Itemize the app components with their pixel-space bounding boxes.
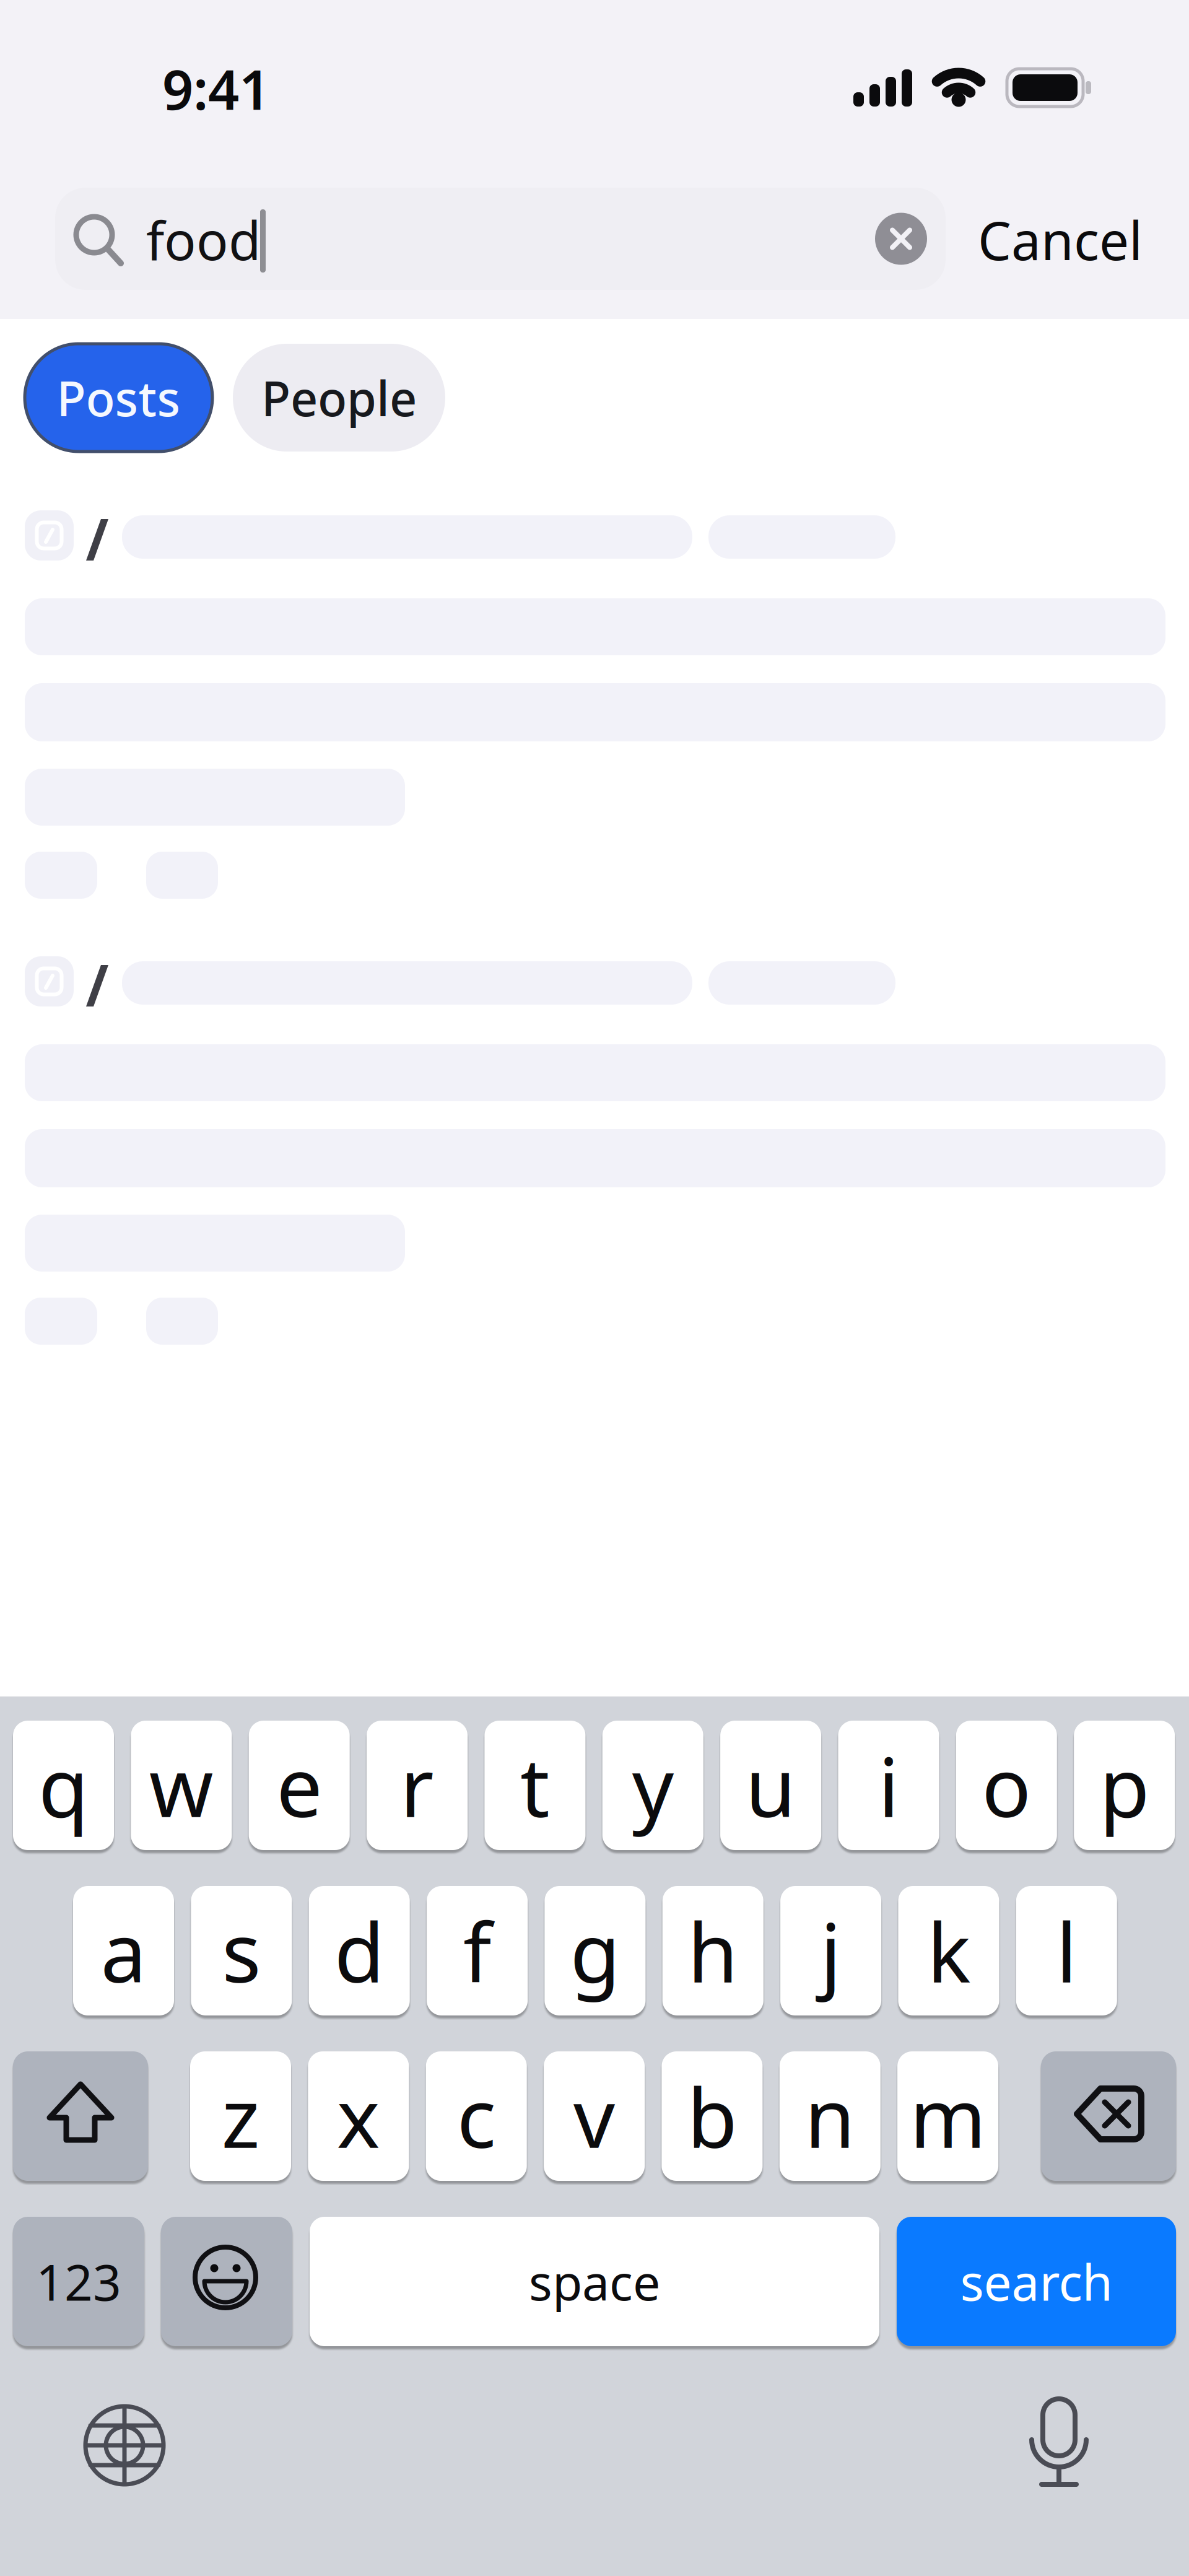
staticText: food [146,205,261,275]
staticText: p [1099,1731,1149,1840]
staticText: a [101,1896,146,2005]
button[interactable]: k [898,1886,999,2015]
button[interactable]: i [838,1721,939,1850]
staticText: n [805,2062,855,2170]
staticText: k [927,1896,970,2005]
button[interactable]: u [720,1721,821,1850]
button[interactable]: Emoji [161,2217,292,2346]
staticText: x [337,2062,380,2170]
button[interactable]: Clear text [875,213,927,265]
button[interactable]: r [367,1721,468,1850]
button[interactable]: s [191,1886,292,2015]
staticText: e [276,1731,322,1840]
button[interactable]: food [55,188,946,290]
button[interactable]: o [956,1721,1057,1850]
staticText: g [570,1896,620,2005]
button[interactable]: t [485,1721,585,1850]
staticText: j [820,1896,841,2005]
staticText: search [960,2249,1113,2314]
button[interactable]: b [662,2051,763,2181]
staticText: h [688,1896,738,2005]
button[interactable]: Posts [25,344,212,452]
staticText: z [221,2062,260,2170]
button[interactable]: w [131,1721,232,1850]
staticText: i [878,1731,899,1840]
button[interactable]: a [73,1886,174,2015]
button[interactable]: j [780,1886,881,2015]
staticText: q [38,1731,89,1840]
staticText: m [910,2062,986,2170]
button[interactable]: Shift [13,2051,148,2181]
staticText: u [745,1731,796,1840]
staticText: l [1056,1896,1077,2005]
staticText: b [687,2062,737,2170]
staticText: Posts [57,366,181,429]
button[interactable]: space [310,2217,879,2346]
button[interactable]: search [897,2217,1176,2346]
button[interactable]: l [1016,1886,1117,2015]
staticText: People [261,366,417,429]
staticText: space [529,2249,660,2314]
staticText: o [982,1731,1031,1840]
button[interactable]: x [308,2051,409,2181]
button[interactable]: e [249,1721,350,1850]
button[interactable]: v [544,2051,645,2181]
button[interactable]: Numbers [13,2217,144,2346]
staticText: f [463,1896,491,2005]
button[interactable]: f [427,1886,528,2015]
button[interactable]: c [426,2051,527,2181]
staticText: s [222,1896,261,2005]
button[interactable]: Cancel [978,205,1143,275]
staticText: d [334,1896,384,2005]
button[interactable]: g [545,1886,646,2015]
button[interactable]: q [13,1721,114,1850]
button[interactable]: y [602,1721,703,1850]
button[interactable]: m [897,2051,998,2181]
button[interactable]: h [662,1886,763,2015]
staticText: 9:41 [162,52,270,125]
button[interactable]: d [309,1886,410,2015]
button[interactable]: Next keyboard [79,2400,170,2491]
button[interactable]: p [1074,1721,1175,1850]
staticText: v [573,2062,615,2170]
staticText: 123 [36,2249,121,2314]
staticText: y [632,1731,674,1840]
button[interactable]: People [233,344,445,452]
staticText: r [400,1731,434,1840]
staticText: w [149,1731,214,1840]
staticText: c [457,2062,496,2170]
button[interactable]: Dictate [1011,2396,1107,2493]
button[interactable]: n [780,2051,880,2181]
button[interactable]: z [190,2051,291,2181]
button[interactable]: Delete [1041,2051,1176,2181]
staticText: Cancel [978,205,1143,275]
staticText: t [520,1731,550,1840]
